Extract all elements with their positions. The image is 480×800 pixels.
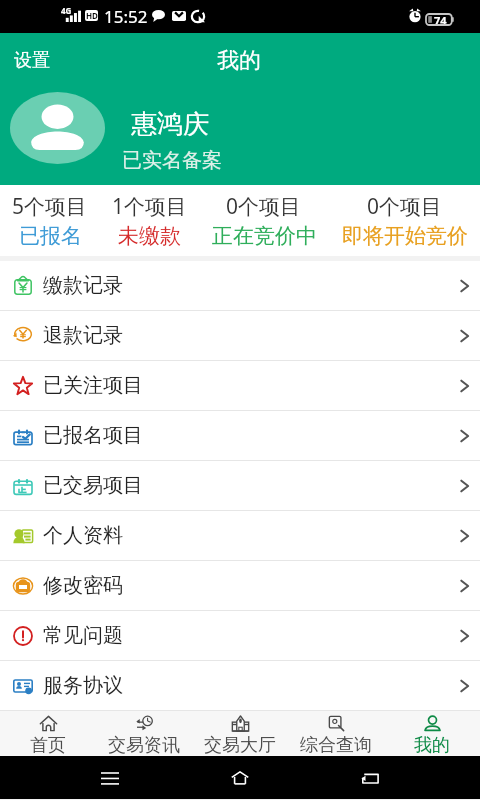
- staticText: 我的: [414, 734, 450, 756]
- staticText: 已报名项目: [43, 423, 143, 448]
- button[interactable]: 缴款记录: [0, 261, 480, 310]
- button[interactable]: Back: [350, 758, 390, 798]
- staticText: 15:52: [104, 5, 148, 28]
- staticText: 我的: [217, 47, 261, 75]
- button[interactable]: 已交易项目: [0, 461, 480, 510]
- staticText: 交易资讯: [108, 734, 180, 756]
- button[interactable]: 我的: [384, 711, 480, 756]
- button[interactable]: 交易资讯: [96, 711, 192, 756]
- staticText: 已实名备案: [122, 148, 222, 173]
- staticText: 即将开始竞价: [342, 223, 468, 249]
- staticText: HD: [86, 10, 98, 21]
- staticText: 5个项目: [12, 192, 88, 221]
- staticText: 首页: [30, 734, 66, 756]
- button[interactable]: 综合查询: [288, 711, 384, 756]
- button[interactable]: 退款记录: [0, 311, 480, 360]
- button[interactable]: 0个项目: [329, 185, 480, 256]
- staticText: 74: [434, 13, 447, 24]
- staticText: 0个项目: [367, 192, 443, 221]
- staticText: 已关注项目: [43, 373, 143, 398]
- staticText: 正在竞价中: [212, 223, 317, 249]
- staticText: 退款记录: [43, 323, 123, 348]
- staticText: 未缴款: [118, 223, 181, 249]
- button[interactable]: 修改密码: [0, 561, 480, 610]
- button[interactable]: Home: [220, 758, 260, 798]
- staticText: 个人资料: [43, 523, 123, 548]
- button[interactable]: 个人资料: [0, 511, 480, 560]
- button[interactable]: 已关注项目: [0, 361, 480, 410]
- button[interactable]: 0个项目: [199, 185, 329, 256]
- button[interactable]: 已报名项目: [0, 411, 480, 460]
- staticText: 4G: [61, 5, 72, 16]
- staticText: 缴款记录: [43, 273, 123, 298]
- button[interactable]: 服务协议: [0, 661, 480, 710]
- staticText: 1个项目: [112, 192, 188, 221]
- staticText: 交易大厅: [204, 734, 276, 756]
- staticText: 常见问题: [43, 623, 123, 648]
- button[interactable]: 1个项目: [100, 185, 199, 256]
- staticText: 修改密码: [43, 573, 123, 598]
- button[interactable]: 常见问题: [0, 611, 480, 660]
- staticText: 0个项目: [226, 192, 302, 221]
- staticText: 惠鸿庆: [131, 108, 209, 141]
- staticText: 设置: [14, 49, 50, 72]
- button[interactable]: Recents: [90, 758, 130, 798]
- staticText: 已报名: [19, 223, 82, 249]
- staticText: 服务协议: [43, 673, 123, 698]
- staticText: 综合查询: [300, 734, 372, 756]
- button[interactable]: 5个项目: [0, 185, 100, 256]
- staticText: 已交易项目: [43, 473, 143, 498]
- button[interactable]: 首页: [0, 711, 96, 756]
- button[interactable]: 设置: [14, 49, 50, 72]
- button[interactable]: 交易大厅: [192, 711, 288, 756]
